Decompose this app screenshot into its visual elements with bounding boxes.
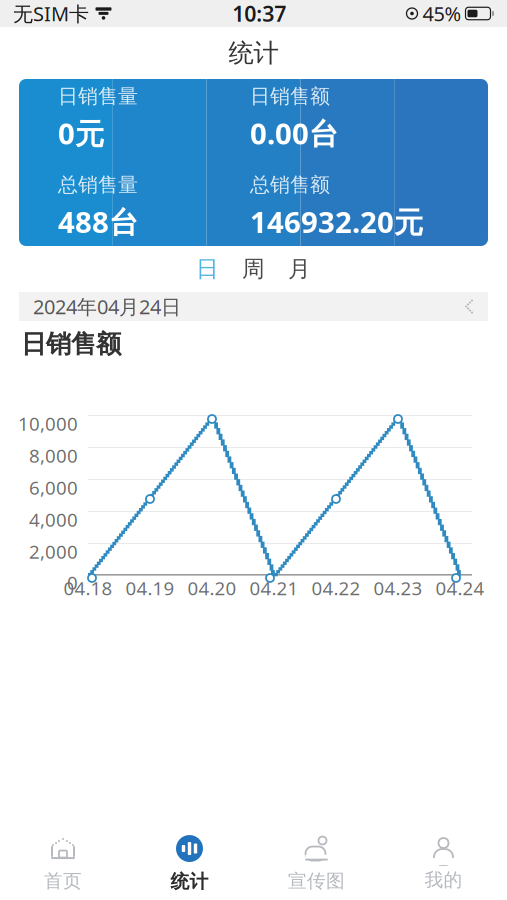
staticText: 146932.20元 [250, 202, 423, 241]
staticText: 统计 [170, 870, 208, 893]
staticText: 0元 [58, 113, 104, 152]
staticText: 总销售量 [58, 172, 138, 197]
staticText: 6,000 [29, 475, 78, 500]
staticText: 月 [288, 255, 311, 283]
staticText: 日销售额 [21, 328, 121, 359]
staticText: 04.19 [125, 576, 174, 600]
staticText: 无SIM卡 [13, 0, 89, 27]
button[interactable]: 月 [276, 249, 322, 289]
staticText: 488台 [58, 202, 138, 241]
staticText: 8,000 [29, 443, 78, 468]
staticText: 2024年04月24日 [33, 293, 181, 320]
staticText: 日 [196, 255, 219, 283]
button[interactable]: 统计 [126, 828, 253, 900]
staticText: 04.23 [373, 576, 422, 600]
staticText: 45% [422, 0, 461, 27]
button[interactable]: 宣传图 [253, 828, 380, 900]
staticText: 总销售额 [250, 172, 330, 197]
button[interactable]: 日 [184, 249, 230, 289]
staticText: 04.21 [249, 576, 298, 600]
staticText: 统计 [228, 37, 278, 68]
staticText: 2,000 [29, 539, 78, 564]
button[interactable]: 首页 [0, 828, 126, 900]
button[interactable]: 2024年04月24日 [19, 292, 488, 321]
staticText: 日销售额 [250, 84, 330, 109]
staticText: 4,000 [29, 507, 78, 532]
button[interactable]: 周 [230, 249, 276, 289]
staticText: 04.24 [435, 576, 484, 600]
staticText: 周 [242, 255, 265, 283]
staticText: 宣传图 [288, 869, 345, 892]
staticText: 0.00台 [250, 113, 338, 152]
staticText: 10,000 [18, 411, 78, 436]
staticText: 0 [67, 570, 78, 595]
staticText: 10:37 [232, 0, 286, 28]
staticText: 日销售量 [58, 84, 138, 109]
button[interactable]: 我的 [380, 828, 507, 900]
staticText: 首页 [44, 869, 82, 892]
staticText: 04.18 [63, 576, 112, 600]
staticText: 04.20 [187, 576, 236, 600]
staticText: 04.22 [311, 576, 360, 600]
staticText: 我的 [424, 868, 462, 891]
